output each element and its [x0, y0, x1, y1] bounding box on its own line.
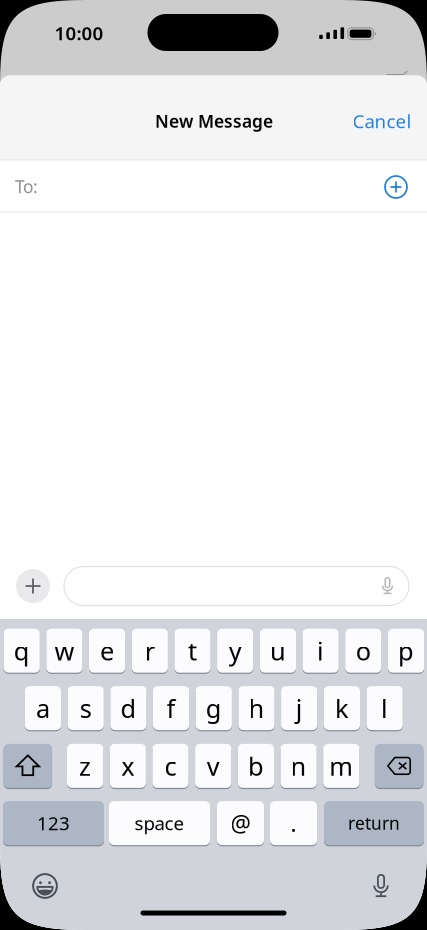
- button[interactable]: n: [280, 743, 317, 789]
- staticText: z: [79, 749, 91, 783]
- button[interactable]: t: [174, 628, 211, 674]
- staticText: space: [134, 811, 184, 835]
- staticText: o: [356, 634, 371, 667]
- staticText: 123: [37, 811, 70, 835]
- button[interactable]: m: [323, 743, 359, 789]
- button[interactable]: Cancel: [337, 99, 427, 143]
- button[interactable]: [4, 743, 52, 789]
- button[interactable]: a: [25, 685, 61, 731]
- button[interactable]: Dictate: [359, 864, 403, 908]
- staticText: f: [167, 691, 176, 725]
- button[interactable]: Emoji: [23, 864, 67, 908]
- staticText: g: [206, 691, 222, 725]
- staticText: .: [290, 808, 296, 838]
- staticText: i: [317, 634, 324, 667]
- button[interactable]: s: [68, 685, 104, 731]
- button[interactable]: q: [4, 628, 40, 674]
- staticText: w: [54, 634, 74, 667]
- button[interactable]: x: [110, 743, 146, 789]
- staticText: u: [270, 634, 286, 667]
- button[interactable]: .: [270, 800, 317, 846]
- staticText: @: [230, 808, 250, 838]
- staticText: l: [381, 691, 388, 725]
- button[interactable]: space: [109, 800, 210, 846]
- staticText: s: [80, 691, 92, 725]
- button[interactable]: k: [324, 685, 360, 731]
- staticText: d: [120, 691, 136, 725]
- button[interactable]: @: [217, 800, 264, 846]
- button[interactable]: b: [238, 743, 274, 789]
- staticText: c: [164, 749, 176, 783]
- button[interactable]: r: [132, 628, 168, 674]
- staticText: e: [100, 634, 114, 667]
- button[interactable]: return: [324, 800, 424, 846]
- staticText: New Message: [155, 109, 273, 132]
- button[interactable]: y: [217, 628, 253, 674]
- button[interactable]: Add contact: [374, 165, 418, 209]
- button[interactable]: l: [366, 685, 403, 731]
- button[interactable]: z: [67, 743, 103, 789]
- button[interactable]: 123: [3, 800, 104, 846]
- button[interactable]: [375, 743, 423, 789]
- staticText: q: [14, 634, 30, 667]
- button[interactable]: c: [152, 743, 189, 789]
- staticText: h: [248, 691, 264, 725]
- staticText: k: [335, 691, 349, 725]
- staticText: To:: [15, 175, 38, 198]
- staticText: return: [348, 812, 400, 835]
- button[interactable]: d: [110, 685, 146, 731]
- button[interactable]: o: [345, 628, 381, 674]
- staticText: a: [36, 691, 50, 725]
- button[interactable]: j: [281, 685, 317, 731]
- button[interactable]: g: [196, 685, 232, 731]
- button[interactable]: p: [388, 628, 424, 674]
- staticText: r: [145, 634, 155, 667]
- button[interactable]: Message: [64, 565, 409, 607]
- staticText: v: [207, 749, 220, 783]
- staticText: x: [121, 749, 134, 783]
- staticText: t: [188, 634, 197, 667]
- button[interactable]: Add attachment: [11, 564, 55, 608]
- staticText: 10:00: [54, 21, 103, 45]
- button[interactable]: Dictate: [370, 569, 404, 603]
- button[interactable]: w: [46, 628, 82, 674]
- button[interactable]: u: [260, 628, 296, 674]
- button[interactable]: i: [302, 628, 339, 674]
- button[interactable]: v: [195, 743, 231, 789]
- staticText: Cancel: [352, 109, 411, 133]
- staticText: m: [329, 749, 353, 783]
- staticText: j: [296, 691, 303, 725]
- button[interactable]: f: [153, 685, 189, 731]
- staticText: p: [398, 634, 414, 667]
- button[interactable]: e: [89, 628, 125, 674]
- button[interactable]: h: [238, 685, 275, 731]
- staticText: b: [248, 749, 264, 783]
- staticText: y: [229, 634, 242, 667]
- staticText: n: [291, 749, 307, 783]
